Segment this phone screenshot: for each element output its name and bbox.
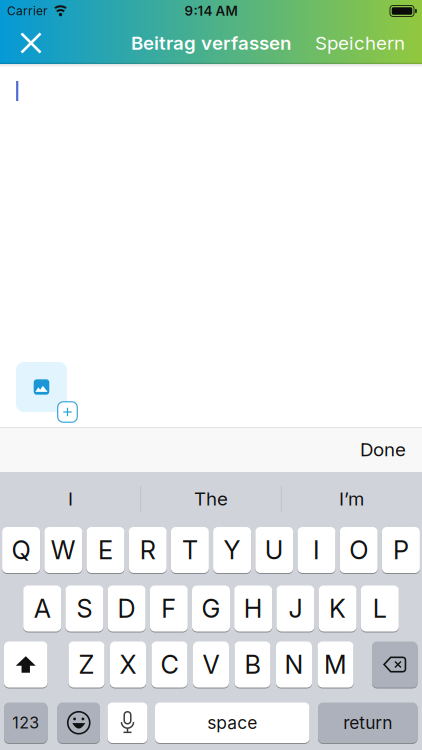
- button[interactable]: M: [317, 641, 353, 688]
- staticText: Z: [78, 650, 94, 679]
- staticText: return: [343, 712, 392, 733]
- button[interactable]: Shift: [4, 641, 47, 688]
- staticText: G: [201, 594, 220, 623]
- staticText: O: [349, 535, 368, 565]
- staticText: D: [118, 594, 136, 623]
- button[interactable]: V: [193, 641, 229, 688]
- staticText: The: [194, 488, 228, 510]
- button[interactable]: Numbers: [4, 702, 47, 743]
- staticText: Q: [12, 535, 31, 565]
- staticText: Speichern: [315, 32, 405, 54]
- button[interactable]: A: [23, 585, 61, 632]
- button[interactable]: return: [318, 702, 417, 743]
- button[interactable]: Dictate: [107, 702, 147, 743]
- button[interactable]: L: [361, 585, 399, 632]
- staticText: A: [34, 594, 51, 623]
- staticText: 9:14 AM: [184, 3, 237, 19]
- staticText: U: [265, 535, 284, 565]
- staticText: T: [182, 535, 198, 565]
- staticText: M: [324, 650, 347, 679]
- staticText: N: [284, 650, 303, 679]
- button[interactable]: F: [150, 585, 188, 632]
- button[interactable]: K: [319, 585, 357, 632]
- button[interactable]: Add image: [16, 362, 67, 412]
- staticText: P: [393, 535, 409, 565]
- staticText: Y: [224, 535, 241, 565]
- button[interactable]: X: [110, 641, 146, 688]
- button[interactable]: R: [129, 526, 167, 573]
- button[interactable]: I’m: [281, 472, 422, 526]
- button[interactable]: T: [171, 526, 209, 573]
- staticText: Done: [360, 438, 406, 460]
- staticText: I’m: [339, 488, 364, 510]
- button[interactable]: C: [151, 641, 187, 688]
- button[interactable]: Add: [58, 402, 77, 422]
- staticText: H: [244, 594, 263, 623]
- staticText: I: [313, 535, 320, 565]
- button[interactable]: Done: [360, 438, 422, 460]
- button[interactable]: space: [155, 702, 309, 743]
- button[interactable]: Emoji: [57, 702, 100, 743]
- staticText: 123: [12, 713, 39, 732]
- staticText: R: [140, 535, 156, 565]
- button[interactable]: H: [234, 585, 272, 632]
- staticText: K: [329, 594, 346, 623]
- staticText: X: [119, 650, 136, 679]
- button[interactable]: N: [276, 641, 312, 688]
- button[interactable]: Q: [2, 526, 40, 573]
- button[interactable]: J: [276, 585, 314, 632]
- button[interactable]: Close: [9, 22, 53, 64]
- button[interactable]: I: [0, 472, 141, 526]
- staticText: E: [98, 535, 113, 565]
- button[interactable]: G: [192, 585, 230, 632]
- staticText: space: [207, 712, 257, 733]
- staticText: Carrier: [7, 4, 48, 18]
- staticText: V: [202, 650, 219, 679]
- button[interactable]: O: [340, 526, 378, 573]
- button[interactable]: E: [86, 526, 124, 573]
- staticText: J: [288, 594, 302, 623]
- button[interactable]: U: [255, 526, 293, 573]
- staticText: F: [161, 594, 176, 623]
- staticText: I: [68, 488, 73, 510]
- button[interactable]: Z: [68, 641, 104, 688]
- staticText: Beitrag verfassen: [131, 32, 291, 54]
- staticText: S: [76, 594, 92, 623]
- button[interactable]: The: [141, 472, 281, 526]
- button[interactable]: Speichern: [315, 32, 422, 54]
- button[interactable]: W: [44, 526, 82, 573]
- button[interactable]: P: [382, 526, 420, 573]
- button[interactable]: Y: [213, 526, 251, 573]
- staticText: C: [160, 650, 178, 679]
- button[interactable]: Delete: [372, 641, 417, 688]
- staticText: B: [244, 650, 260, 679]
- button[interactable]: I: [297, 526, 335, 573]
- button[interactable]: S: [65, 585, 103, 632]
- button[interactable]: B: [234, 641, 270, 688]
- button[interactable]: D: [108, 585, 146, 632]
- staticText: L: [373, 594, 387, 623]
- staticText: W: [51, 535, 76, 565]
